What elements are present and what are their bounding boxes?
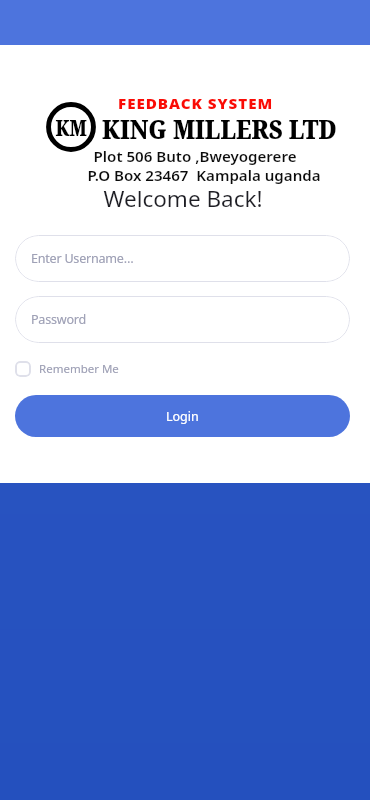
staticText: P.O Box 23467 Kampala uganda xyxy=(19,165,370,186)
button[interactable]: Password xyxy=(15,296,350,343)
staticText: Enter Username… xyxy=(31,250,134,267)
staticText: Login xyxy=(166,408,199,425)
staticText: Welcome Back! xyxy=(0,183,368,214)
staticText: KM xyxy=(55,112,87,142)
staticText: FEEDBACK SYSTEM xyxy=(118,94,274,113)
button[interactable]: Enter Username… xyxy=(15,235,350,282)
staticText: KING MILLERS LTD xyxy=(102,110,337,147)
button[interactable]: Login xyxy=(15,395,350,437)
button[interactable]: Remember Me xyxy=(13,359,119,379)
staticText: Plot 506 Buto ,Bweyogerere xyxy=(10,146,370,167)
staticText: Password xyxy=(31,311,86,328)
staticText: Remember Me xyxy=(39,361,119,377)
